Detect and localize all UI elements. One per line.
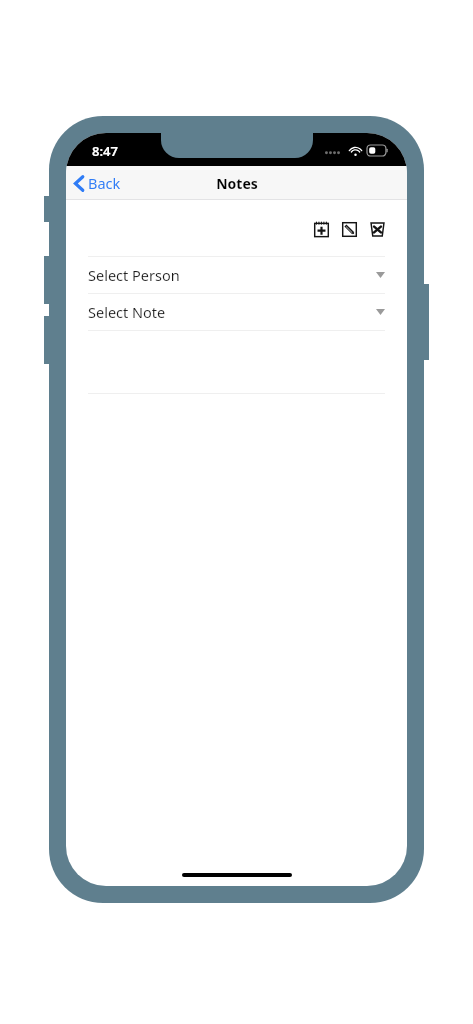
button[interactable]: Select Note [66, 294, 407, 330]
staticText: Select Note [88, 302, 166, 322]
staticText: Notes [216, 174, 258, 193]
staticText: 8:47 [92, 142, 118, 160]
button[interactable]: Add note [311, 219, 331, 239]
staticText: Select Person [88, 265, 180, 285]
button[interactable]: Delete note [367, 219, 387, 239]
button[interactable]: Edit note [339, 219, 359, 239]
button[interactable]: Select Person [66, 257, 407, 293]
button[interactable]: Back [66, 169, 131, 197]
staticText: Back [88, 173, 121, 193]
